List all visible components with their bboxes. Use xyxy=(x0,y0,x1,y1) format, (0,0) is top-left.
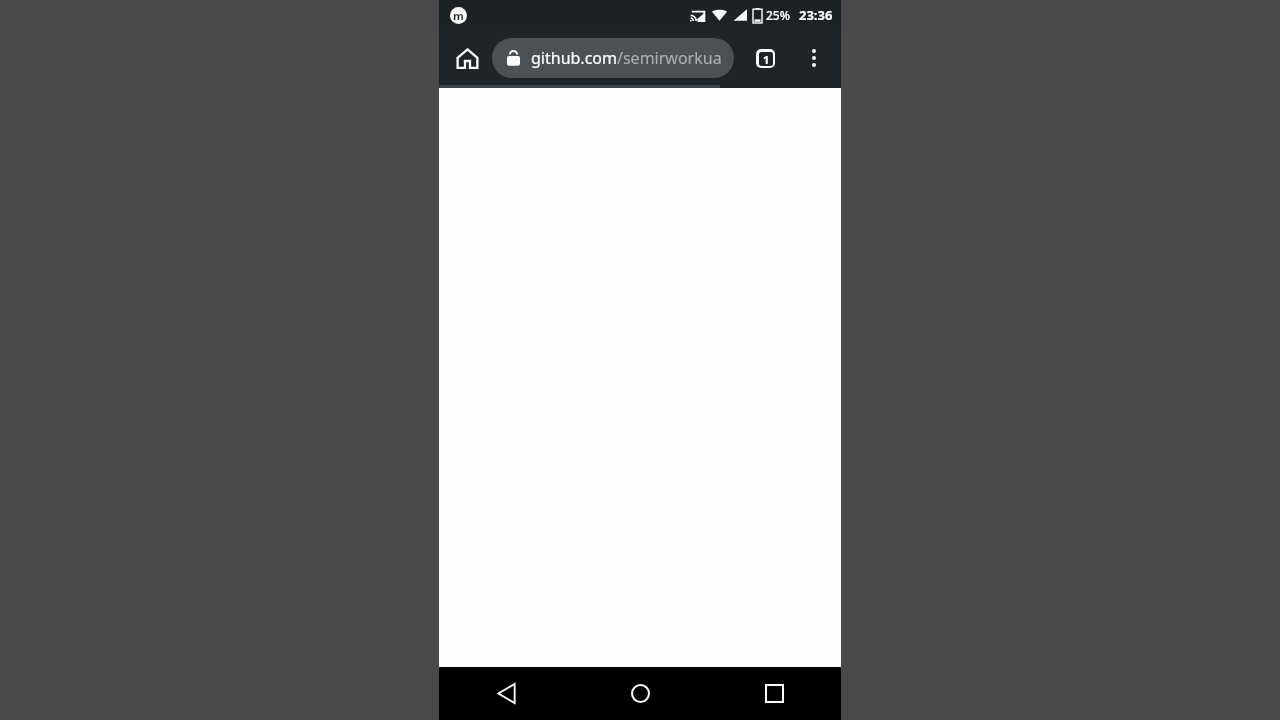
button[interactable]: Tabs, 1 open xyxy=(746,39,784,77)
staticText: 23:36 xyxy=(799,6,833,24)
button[interactable]: Back xyxy=(439,667,573,720)
staticText: 25% xyxy=(766,7,790,23)
button[interactable]: Home xyxy=(447,38,487,78)
staticText: github.com xyxy=(531,47,617,69)
button[interactable]: Recent apps xyxy=(707,667,841,720)
button[interactable]: More options xyxy=(795,39,833,77)
staticText: m xyxy=(453,8,464,23)
staticText: /semirworkua xyxy=(617,47,722,69)
button[interactable]: github.com xyxy=(492,38,734,78)
button[interactable]: Home xyxy=(573,667,707,720)
staticText: 1 xyxy=(763,52,770,66)
